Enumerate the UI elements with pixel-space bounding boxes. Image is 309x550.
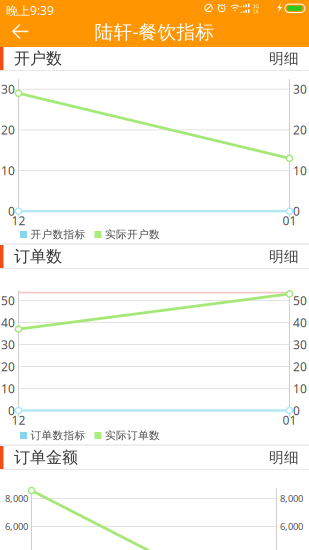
staticText: 明细 bbox=[269, 49, 299, 67]
staticText: 20 bbox=[1, 358, 15, 374]
staticText: 实际订单数 bbox=[105, 429, 160, 442]
staticText: 20 bbox=[293, 358, 307, 374]
button[interactable]: 开户数 bbox=[0, 47, 309, 70]
button[interactable]: Back bbox=[0, 16, 30, 46]
staticText: 实际开户数 bbox=[105, 228, 160, 241]
staticText: 明细 bbox=[269, 448, 299, 466]
staticText: 30 bbox=[1, 336, 15, 352]
staticText: 晚上9:39 bbox=[6, 2, 54, 18]
staticText: 明细 bbox=[269, 247, 299, 265]
staticText: 8,000 bbox=[5, 492, 28, 505]
staticText: 20 bbox=[1, 122, 15, 138]
staticText: 陆轩-餐饮指标 bbox=[94, 19, 214, 44]
staticText: 10 bbox=[293, 163, 307, 178]
staticText: 6,000 bbox=[280, 520, 303, 533]
staticText: 40 bbox=[293, 314, 307, 330]
staticText: 开户数指标 bbox=[30, 228, 85, 241]
staticText: 1X bbox=[252, 8, 258, 15]
staticText: 01 bbox=[282, 213, 296, 229]
staticText: 订单数 bbox=[14, 247, 62, 266]
staticText: 订单数指标 bbox=[30, 429, 85, 442]
staticText: 50 bbox=[293, 292, 307, 308]
staticText: 12 bbox=[11, 412, 25, 428]
staticText: 10 bbox=[293, 380, 307, 396]
staticText: 12 bbox=[11, 213, 25, 229]
staticText: 50 bbox=[1, 292, 15, 308]
staticText: 0 bbox=[293, 203, 300, 219]
staticText: 40 bbox=[1, 314, 15, 330]
staticText: 30 bbox=[1, 81, 15, 97]
staticText: 3G bbox=[252, 3, 259, 10]
staticText: 6,000 bbox=[5, 520, 28, 533]
staticText: 开户数 bbox=[14, 49, 62, 68]
staticText: 8,000 bbox=[280, 492, 303, 505]
button[interactable]: 订单数 bbox=[0, 245, 309, 268]
button[interactable]: 订单金额 bbox=[0, 446, 309, 469]
staticText: 01 bbox=[282, 412, 296, 428]
staticText: 30 bbox=[293, 81, 307, 97]
staticText: 30 bbox=[293, 336, 307, 352]
staticText: 20 bbox=[293, 122, 307, 138]
staticText: 0 bbox=[8, 402, 15, 418]
staticText: 10 bbox=[1, 380, 15, 396]
staticText: 10 bbox=[1, 163, 15, 178]
staticText: 0 bbox=[293, 402, 300, 418]
staticText: 0 bbox=[8, 203, 15, 219]
staticText: 订单金额 bbox=[14, 448, 78, 467]
